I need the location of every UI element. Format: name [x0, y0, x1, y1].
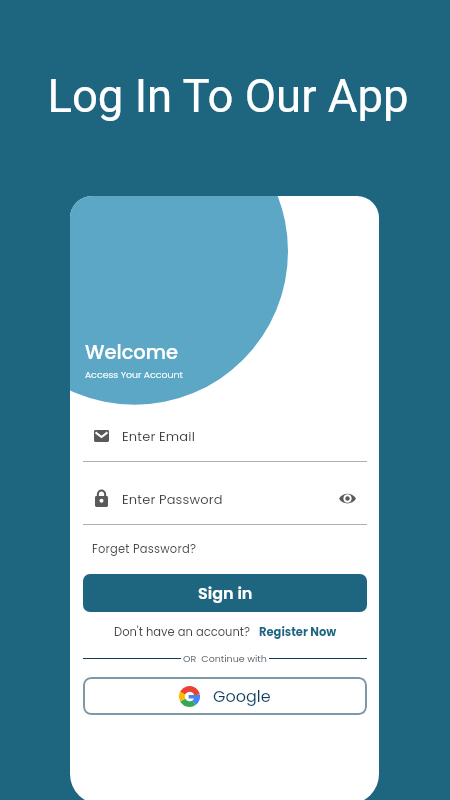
staticText: Register Now	[259, 624, 337, 640]
button[interactable]: Sign in	[83, 574, 367, 612]
button[interactable]: Enter Email	[83, 420, 367, 452]
staticText: Enter Email	[122, 427, 195, 445]
staticText: Forget Password?	[92, 541, 197, 557]
button[interactable]: Show password	[329, 482, 365, 515]
staticText: Log In To Our App	[3, 70, 450, 123]
button[interactable]: Enter Password	[83, 482, 367, 515]
staticText: Access Your Account	[85, 368, 183, 381]
staticText: Welcome	[85, 339, 179, 366]
button[interactable]: Register Now	[259, 624, 337, 640]
button[interactable]: Google	[83, 677, 367, 715]
staticText: Don't have an account?	[114, 624, 250, 640]
button[interactable]: Forget Password?	[86, 536, 203, 562]
staticText: OR Continue with	[183, 652, 267, 665]
staticText: Google	[213, 685, 271, 707]
staticText: Sign in	[198, 582, 253, 604]
staticText: Enter Password	[122, 490, 223, 508]
